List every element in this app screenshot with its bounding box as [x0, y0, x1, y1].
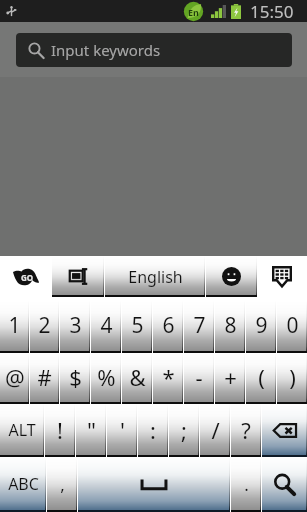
staticText: 1 [8, 311, 21, 340]
button[interactable]: , [47, 457, 77, 512]
staticText: 3 [69, 311, 82, 340]
button[interactable]: 1 [0, 301, 29, 353]
button[interactable]: # [30, 353, 59, 404]
staticText: 0 [286, 311, 299, 340]
staticText: ) [289, 362, 296, 392]
staticText: ! [57, 415, 63, 445]
button[interactable]: GO Keyboard menu [0, 256, 52, 297]
staticText: : [150, 415, 156, 445]
staticText: # [37, 362, 52, 392]
staticText: 15:50 [250, 0, 294, 22]
staticText: 7 [193, 311, 206, 340]
staticText: - [195, 362, 203, 392]
button[interactable]: Hide keyboard [257, 256, 307, 297]
staticText: ? [241, 415, 251, 445]
button[interactable]: 5 [122, 301, 152, 353]
staticText: ; [181, 415, 187, 445]
button[interactable]: " [76, 404, 106, 457]
staticText: English [128, 266, 183, 288]
button[interactable]: ( [246, 353, 276, 404]
button[interactable]: 3 [60, 301, 90, 353]
button[interactable]: English [105, 256, 205, 297]
button[interactable]: ! [45, 404, 75, 457]
staticText: ' [120, 415, 125, 445]
staticText: Input keywords [51, 40, 161, 60]
button[interactable]: ? [231, 404, 261, 457]
staticText: En [188, 6, 199, 18]
staticText: 4 [100, 311, 113, 340]
staticText: ( [258, 362, 265, 392]
staticText: % [97, 362, 116, 392]
button[interactable]: ALT [0, 404, 44, 457]
button[interactable]: Input keywords [16, 33, 292, 67]
staticText: 9 [255, 311, 268, 340]
staticText: 5 [131, 311, 144, 340]
button[interactable]: 4 [91, 301, 121, 353]
button[interactable]: Space [78, 457, 230, 512]
button[interactable]: ' [107, 404, 137, 457]
button[interactable]: $ [60, 353, 90, 404]
staticText: * [162, 362, 175, 392]
button[interactable]: 2 [30, 301, 59, 353]
button[interactable]: / [200, 404, 230, 457]
staticText: & [129, 362, 146, 392]
staticText: + [224, 362, 237, 392]
button[interactable]: 8 [215, 301, 245, 353]
staticText: ALT [8, 419, 36, 441]
button[interactable]: Emoji [206, 256, 257, 297]
button[interactable]: Search [262, 457, 307, 512]
button[interactable]: @ [0, 353, 29, 404]
button[interactable]: + [215, 353, 245, 404]
staticText: " [87, 415, 96, 445]
button[interactable]: Theme [52, 256, 104, 297]
button[interactable]: ABC [0, 457, 46, 512]
staticText: 8 [224, 311, 237, 340]
button[interactable]: % [91, 353, 121, 404]
staticText: 2 [38, 311, 51, 340]
button[interactable]: 6 [153, 301, 183, 353]
staticText: @ [5, 362, 25, 392]
button[interactable]: 7 [184, 301, 214, 353]
button[interactable]: ) [277, 353, 307, 404]
staticText: . [244, 473, 249, 496]
staticText: / [211, 415, 220, 445]
button[interactable]: 0 [277, 301, 307, 353]
button[interactable]: : [138, 404, 168, 457]
staticText: ABC [8, 473, 39, 495]
button[interactable]: Backspace [262, 404, 307, 457]
staticText: GO [21, 272, 34, 283]
button[interactable]: - [184, 353, 214, 404]
staticText: , [60, 473, 65, 496]
button[interactable]: & [122, 353, 152, 404]
button[interactable]: . [231, 457, 261, 512]
button[interactable]: ; [169, 404, 199, 457]
button[interactable]: 9 [246, 301, 276, 353]
button[interactable]: * [153, 353, 183, 404]
staticText: 6 [162, 311, 175, 340]
staticText: $ [69, 362, 82, 392]
